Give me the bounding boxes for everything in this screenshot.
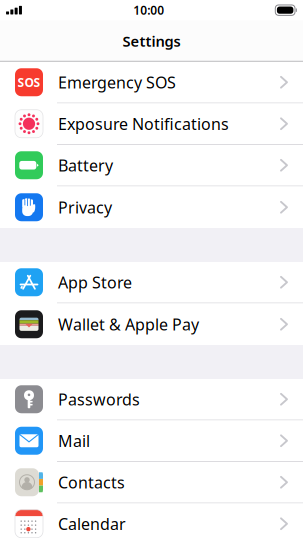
- button[interactable]: SOS: [0, 62, 303, 103]
- button[interactable]: Contacts: [0, 462, 303, 503]
- button[interactable]: Wallet & Apple Pay: [0, 303, 303, 345]
- button[interactable]: Calendar: [0, 503, 303, 538]
- button[interactable]: Mail: [0, 420, 303, 462]
- staticText: Battery: [58, 155, 113, 176]
- staticText: Contacts: [58, 472, 125, 493]
- staticText: Mail: [58, 430, 90, 451]
- staticText: Calendar: [58, 513, 126, 534]
- button[interactable]: Exposure Notifications: [0, 103, 303, 145]
- staticText: Wallet & Apple Pay: [58, 314, 199, 335]
- button[interactable]: Battery: [0, 145, 303, 186]
- staticText: Emergency SOS: [58, 72, 176, 93]
- staticText: Passwords: [58, 389, 140, 410]
- staticText: App Store: [58, 272, 132, 293]
- staticText: SOS: [17, 74, 40, 90]
- button[interactable]: Privacy: [0, 186, 303, 228]
- button[interactable]: Passwords: [0, 379, 303, 420]
- staticText: 10:00: [133, 2, 164, 18]
- staticText: Exposure Notifications: [58, 113, 229, 134]
- button[interactable]: App Store: [0, 262, 303, 303]
- staticText: Privacy: [58, 197, 112, 218]
- staticText: Settings: [122, 31, 180, 51]
